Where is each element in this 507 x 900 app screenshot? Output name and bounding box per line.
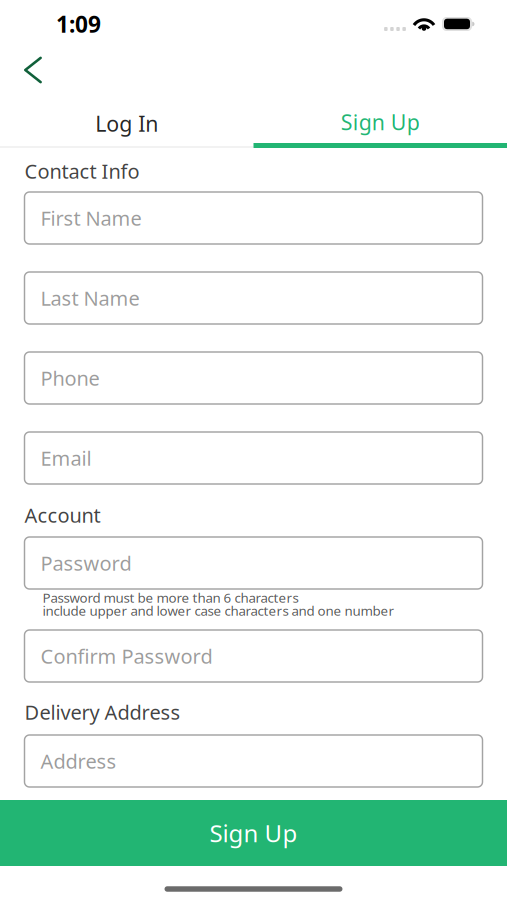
button[interactable]: First Name (24, 192, 482, 244)
staticText: Email (40, 445, 91, 471)
staticText: Sign Up (209, 817, 297, 849)
button[interactable]: Phone (24, 352, 482, 404)
button[interactable]: Sign Up (253, 92, 507, 148)
button[interactable]: Back (0, 48, 84, 92)
button[interactable]: Password (24, 537, 482, 589)
staticText: Password must be more than 6 characters (42, 589, 298, 606)
staticText: Address (40, 748, 116, 774)
staticText: Confirm Password (40, 643, 212, 669)
staticText: Delivery Address (24, 699, 180, 725)
staticText: Log In (95, 109, 158, 138)
staticText: Last Name (40, 285, 139, 311)
staticText: Phone (40, 365, 99, 391)
staticText: First Name (40, 205, 141, 231)
staticText: Contact Info (24, 158, 139, 184)
button[interactable]: Email (24, 432, 482, 484)
button[interactable]: Address (24, 735, 482, 787)
staticText: Password (40, 550, 131, 576)
button[interactable]: Log In (0, 92, 253, 148)
button[interactable]: Confirm Password (24, 630, 482, 682)
staticText: 1:09 (56, 9, 101, 39)
staticText: include upper and lower case characters … (42, 602, 394, 619)
staticText: Sign Up (341, 108, 420, 136)
staticText: Account (24, 502, 100, 528)
button[interactable]: Last Name (24, 272, 482, 324)
button[interactable]: Sign Up (0, 800, 507, 866)
